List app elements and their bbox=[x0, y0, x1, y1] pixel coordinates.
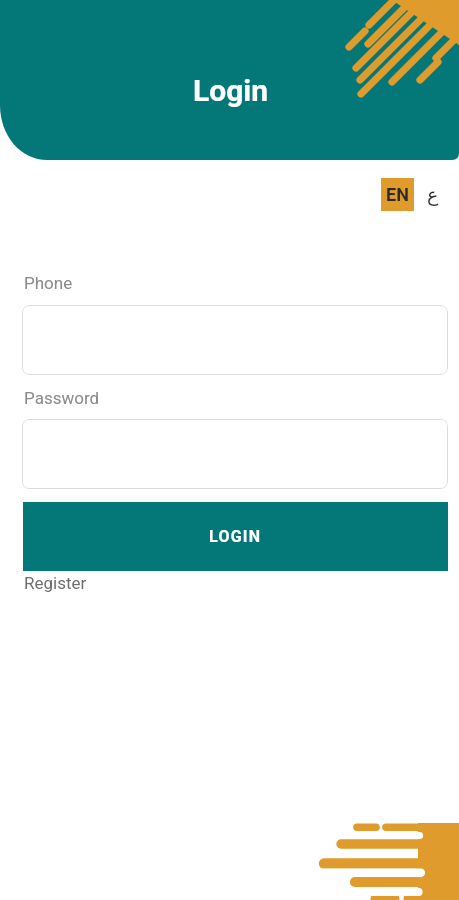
button[interactable]: ع bbox=[421, 182, 445, 206]
button[interactable]: EN bbox=[381, 178, 414, 211]
staticText: Phone bbox=[24, 273, 73, 293]
staticText: Login bbox=[193, 73, 269, 108]
button[interactable]: Register bbox=[24, 573, 87, 593]
staticText: ع bbox=[427, 183, 439, 205]
button[interactable] bbox=[22, 419, 448, 489]
staticText: Register bbox=[24, 573, 87, 593]
staticText: Password bbox=[24, 388, 100, 408]
button[interactable] bbox=[22, 305, 448, 375]
button[interactable]: LOGIN bbox=[23, 502, 448, 571]
staticText: LOGIN bbox=[209, 527, 262, 546]
staticText: EN bbox=[386, 184, 409, 205]
